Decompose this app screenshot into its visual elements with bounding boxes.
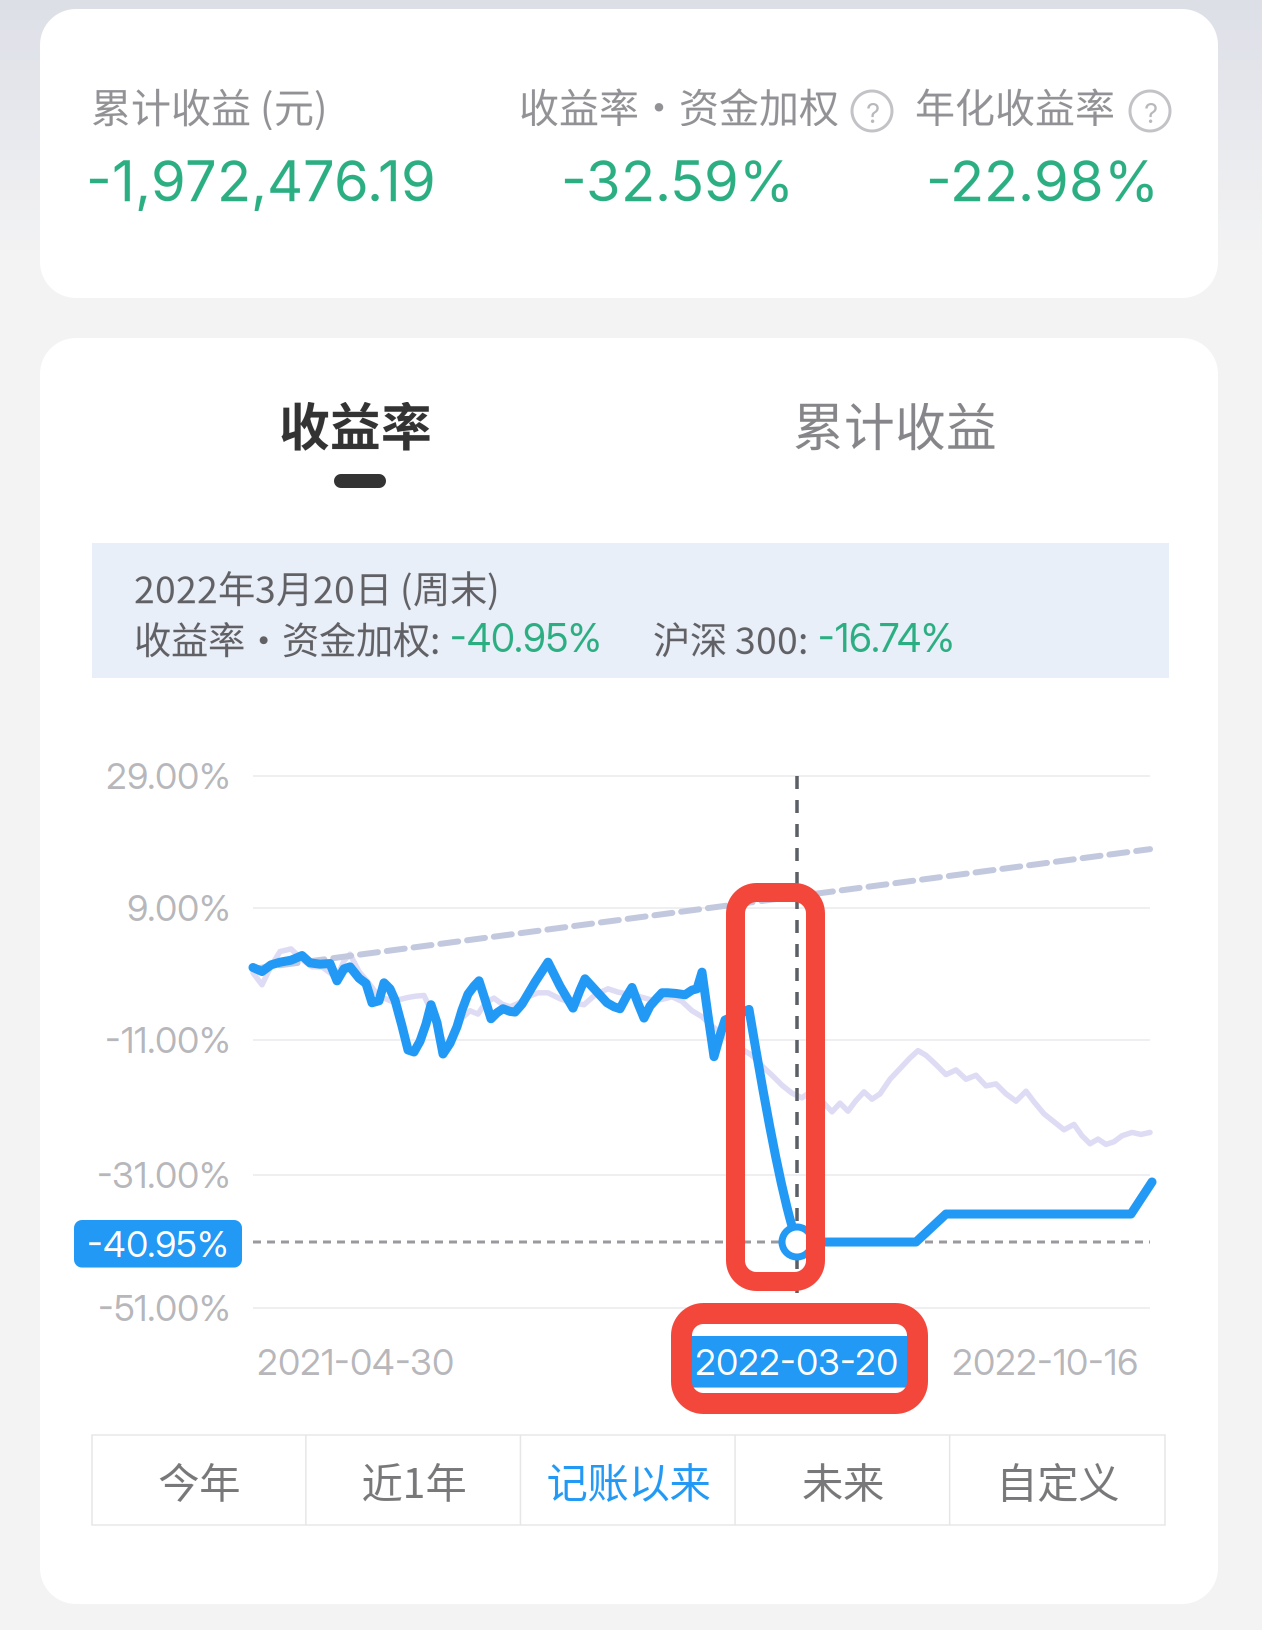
staticText: 累计收益 (元) xyxy=(91,76,328,134)
button[interactable]: 未来 xyxy=(736,1435,950,1525)
staticText: -40.95% xyxy=(87,1222,229,1266)
button[interactable]: 记账以来 xyxy=(521,1435,736,1525)
staticText: -16.74% xyxy=(808,615,955,661)
staticText: 记账以来 xyxy=(546,1450,710,1510)
staticText: 29.00% xyxy=(106,754,231,798)
staticText: 2021-04-30 xyxy=(257,1340,454,1384)
button[interactable]: 自定义 xyxy=(950,1435,1165,1525)
staticText: -22.98% xyxy=(926,147,1159,215)
button[interactable]: 收益率 xyxy=(210,386,590,546)
staticText: 9.00% xyxy=(127,886,231,930)
staticText: 2022-03-20 xyxy=(695,1340,898,1384)
staticText: 年化收益率 xyxy=(915,76,1115,134)
staticText: -51.00% xyxy=(98,1286,231,1330)
staticText: 2022-10-16 xyxy=(952,1340,1138,1384)
staticText: 收益率 xyxy=(279,387,432,460)
button[interactable]: 累计收益 xyxy=(708,386,1088,546)
staticText: -32.59% xyxy=(561,147,794,215)
staticText: 近1年 xyxy=(361,1450,466,1510)
button[interactable]: 今年 xyxy=(92,1435,307,1525)
staticText: -40.95% xyxy=(440,615,602,661)
staticText: 沪深 300: xyxy=(653,611,808,665)
staticText: 自定义 xyxy=(996,1450,1119,1510)
staticText: 累计收益 xyxy=(793,387,997,460)
button[interactable]: 关于年化收益率 xyxy=(1130,91,1170,131)
staticText: 今年 xyxy=(158,1450,240,1510)
staticText: -31.00% xyxy=(97,1153,231,1197)
button[interactable]: 关于收益率·资金加权 xyxy=(852,91,892,131)
staticText: -11.00% xyxy=(105,1018,231,1062)
staticText: 未来 xyxy=(802,1450,884,1510)
staticText: 收益率·资金加权: xyxy=(134,611,440,665)
staticText: 2022年3月20日 (周末) xyxy=(134,560,500,614)
button[interactable]: 近1年 xyxy=(307,1435,521,1525)
staticText: ? xyxy=(866,97,880,129)
staticText: 收益率·资金加权 xyxy=(519,76,839,134)
staticText: ? xyxy=(1144,97,1158,129)
staticText: -1,972,476.19 xyxy=(86,147,436,215)
